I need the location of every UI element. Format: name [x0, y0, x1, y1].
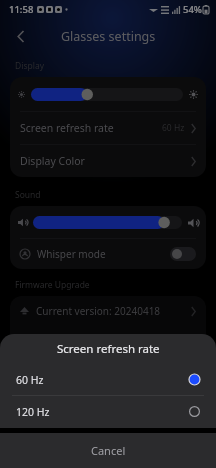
staticText: Display [15, 60, 44, 72]
staticText: 120 Hz [16, 405, 50, 419]
button[interactable]: 120 Hz [0, 396, 216, 427]
staticText: Firmware Upgrade [15, 279, 90, 291]
staticText: 60 Hz [162, 122, 185, 134]
button[interactable]: Screen refresh rate [10, 112, 206, 144]
staticText: Screen refresh rate [57, 341, 160, 357]
staticText: Sound [15, 189, 41, 201]
button[interactable]: 60 Hz [0, 364, 216, 395]
staticText: 54% [183, 3, 202, 16]
staticText: Display Color [20, 154, 85, 168]
button[interactable]: Slider [31, 88, 183, 101]
staticText: Whisper mode [37, 247, 106, 261]
button[interactable]: Display Color [10, 145, 206, 177]
button[interactable]: Whisper mode [10, 239, 206, 269]
button[interactable]: Current version: 20240418 [10, 296, 206, 326]
button[interactable]: Back [10, 25, 32, 47]
staticText: Screen refresh rate [20, 121, 114, 135]
button[interactable]: Slider [33, 216, 182, 229]
button[interactable]: Cancel [0, 433, 216, 468]
staticText: Current version: 20240418 [36, 304, 161, 318]
staticText: Glasses settings [61, 28, 156, 45]
staticText: 60 Hz [16, 373, 44, 387]
staticText: Cancel [91, 443, 126, 458]
staticText: 11:58 [9, 3, 34, 16]
